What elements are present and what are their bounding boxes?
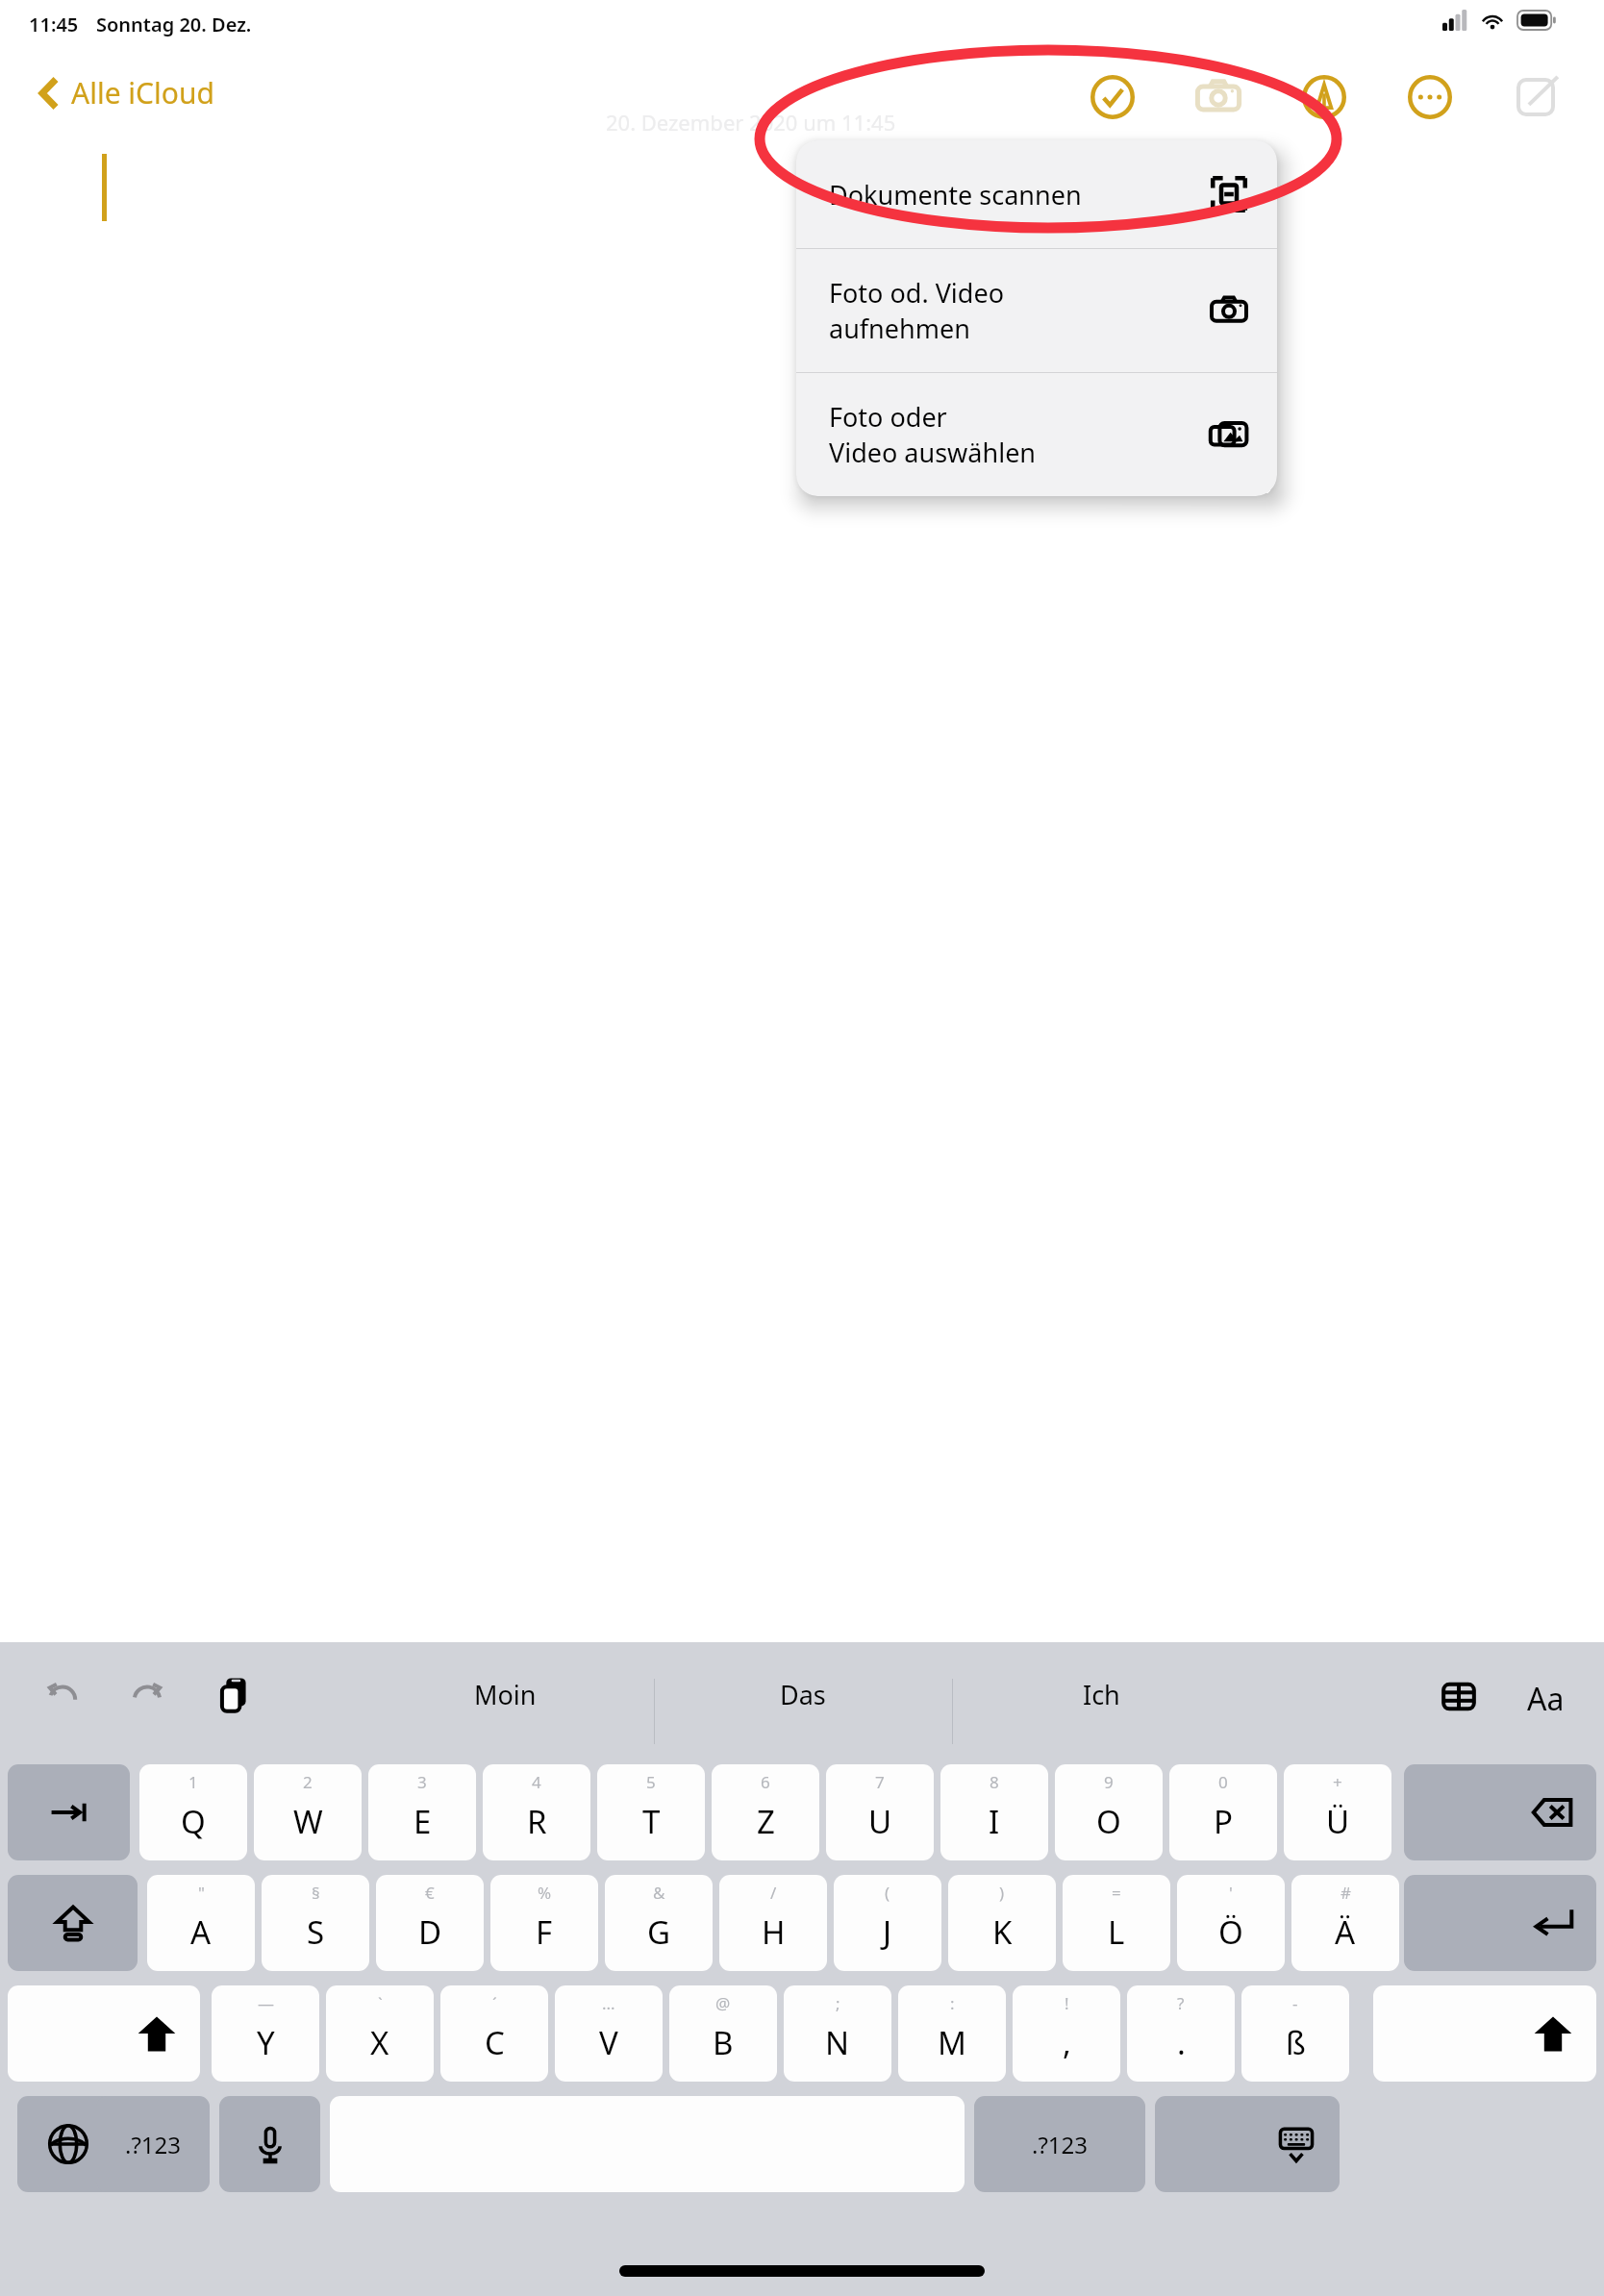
staticText: B — [713, 2021, 734, 2064]
staticText: Sonntag 20. Dez. — [96, 12, 252, 37]
button[interactable]: Das — [659, 1660, 947, 1729]
staticText: : — [950, 1992, 955, 2014]
button[interactable]: Mehr — [1402, 69, 1458, 125]
button[interactable]: 3 — [368, 1764, 476, 1860]
staticText: R — [527, 1800, 547, 1843]
staticText: 11:45 — [29, 12, 79, 37]
staticText: ` — [378, 1992, 383, 2014]
button[interactable]: ? — [1127, 1985, 1235, 2082]
button[interactable]: .?123 — [96, 2096, 210, 2192]
staticText: & — [653, 1882, 665, 1904]
button[interactable]: ` — [326, 1985, 434, 2082]
button[interactable]: ; — [784, 1985, 891, 2082]
button[interactable]: Sprache wechseln — [17, 2096, 118, 2192]
button[interactable]: Wiederholen — [123, 1673, 171, 1721]
staticText: Ä — [1335, 1910, 1356, 1954]
staticText: Dokumente scannen — [829, 177, 1082, 212]
button[interactable]: 2 — [254, 1764, 362, 1860]
button[interactable]: Neue Notiz — [1508, 69, 1564, 125]
button[interactable]: 7 — [826, 1764, 934, 1860]
button[interactable]: = — [1063, 1875, 1170, 1971]
staticText: 6 — [761, 1771, 770, 1793]
staticText: Moin — [474, 1677, 537, 1712]
button[interactable]: Ich — [957, 1660, 1245, 1729]
button[interactable]: Dokumente scannen — [796, 140, 1277, 248]
staticText: Z — [757, 1800, 775, 1843]
button[interactable]: - — [1241, 1985, 1349, 2082]
button[interactable]: @ — [669, 1985, 777, 2082]
button[interactable]: Diktat — [219, 2096, 320, 2192]
button[interactable]: ´ — [440, 1985, 548, 2082]
button[interactable]: % — [490, 1875, 598, 1971]
staticText: M — [938, 2021, 966, 2064]
button[interactable]: Foto oder — [796, 373, 1277, 496]
button[interactable]: Tastatur ausblenden — [1155, 2096, 1340, 2192]
button[interactable]: Tabelle — [1433, 1671, 1485, 1723]
button[interactable]: € — [376, 1875, 484, 1971]
staticText: ´ — [492, 1992, 497, 2014]
button[interactable]: Umschalt — [8, 1985, 200, 2082]
button[interactable]: # — [1291, 1875, 1399, 1971]
staticText: S — [307, 1910, 325, 1954]
staticText: Ich — [1083, 1677, 1120, 1712]
button[interactable]: Kamera — [1190, 69, 1246, 125]
staticText: Foto oder — [829, 399, 947, 435]
button[interactable]: Eingabe — [1404, 1875, 1596, 1971]
button[interactable]: " — [147, 1875, 255, 1971]
button[interactable]: 8 — [940, 1764, 1048, 1860]
staticText: - — [1292, 1992, 1298, 2014]
staticText: ) — [999, 1882, 1005, 1904]
staticText: — — [258, 1992, 274, 2014]
button[interactable]: ... — [555, 1985, 663, 2082]
button[interactable]: ) — [948, 1875, 1056, 1971]
button[interactable]: Umschalt — [1373, 1985, 1596, 2082]
button[interactable]: Widerrufen — [38, 1673, 87, 1721]
staticText: Q — [181, 1800, 206, 1843]
button[interactable]: 9 — [1055, 1764, 1163, 1860]
button[interactable]: Foto od. Video — [796, 249, 1277, 372]
staticText: = — [1112, 1882, 1121, 1904]
staticText: N — [825, 2021, 850, 2064]
button[interactable]: 1 — [139, 1764, 247, 1860]
staticText: Aa — [1527, 1678, 1565, 1720]
staticText: I — [989, 1800, 1000, 1843]
staticText: / — [770, 1882, 777, 1904]
button[interactable]: Moin — [361, 1660, 649, 1729]
button[interactable]: Löschen — [1404, 1764, 1596, 1860]
staticText: E — [414, 1800, 432, 1843]
button[interactable]: / — [719, 1875, 827, 1971]
button[interactable]: § — [262, 1875, 369, 1971]
staticText: @ — [715, 1992, 731, 2014]
staticText: H — [762, 1910, 786, 1954]
button[interactable]: & — [605, 1875, 713, 1971]
button[interactable]: 6 — [712, 1764, 819, 1860]
staticText: Das — [780, 1677, 826, 1712]
button[interactable]: Markierung — [1296, 69, 1352, 125]
button[interactable]: Fertig — [1085, 69, 1140, 125]
staticText: Ü — [1326, 1800, 1350, 1843]
button[interactable]: Umschalt — [8, 1875, 138, 1971]
button[interactable]: Leertaste — [330, 2096, 965, 2192]
button[interactable]: + — [1284, 1764, 1391, 1860]
staticText: Video auswählen — [829, 435, 1037, 470]
staticText: D — [418, 1910, 442, 1954]
button[interactable]: 0 — [1169, 1764, 1277, 1860]
staticText: 1 — [188, 1771, 198, 1793]
button[interactable]: Einsetzen — [210, 1669, 262, 1721]
staticText: Y — [257, 2021, 275, 2064]
button[interactable]: ' — [1177, 1875, 1285, 1971]
button[interactable]: 4 — [483, 1764, 590, 1860]
staticText: ß — [1286, 2021, 1306, 2064]
staticText: W — [293, 1800, 323, 1843]
button[interactable]: .?123 — [974, 2096, 1145, 2192]
button[interactable]: : — [898, 1985, 1006, 2082]
button[interactable]: — — [212, 1985, 319, 2082]
button[interactable]: ( — [834, 1875, 941, 1971]
staticText: 9 — [1104, 1771, 1114, 1793]
button[interactable]: Aa — [1517, 1671, 1573, 1727]
button[interactable]: Alle iCloud — [35, 67, 218, 118]
button[interactable]: 5 — [597, 1764, 705, 1860]
button[interactable]: ! — [1013, 1985, 1120, 2082]
staticText: X — [370, 2021, 389, 2064]
button[interactable]: Tabulator — [8, 1764, 130, 1860]
